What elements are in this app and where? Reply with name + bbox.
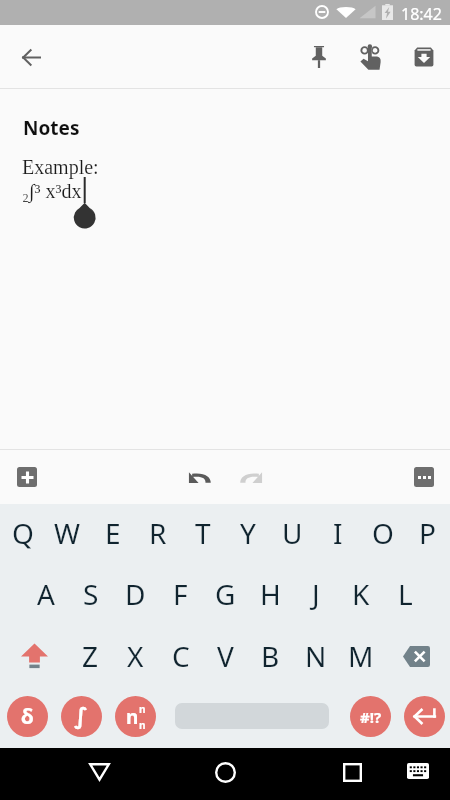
button[interactable]: P <box>405 504 450 562</box>
button[interactable]: Archive <box>401 38 446 76</box>
staticText: K <box>352 575 370 613</box>
staticText: S <box>83 575 99 613</box>
staticText: M <box>348 637 374 675</box>
staticText: D <box>125 575 146 613</box>
staticText: Z <box>82 637 99 675</box>
staticText: δ <box>21 702 34 731</box>
button[interactable]: Switch keyboard <box>395 748 440 793</box>
staticText: H <box>260 575 281 613</box>
staticText: I <box>333 514 343 552</box>
staticText: A <box>37 575 55 613</box>
button[interactable]: Recent apps <box>328 748 376 796</box>
button[interactable]: δ <box>7 696 48 737</box>
staticText: ₂∫³ x³dx <box>22 180 82 202</box>
staticText: n <box>126 704 139 730</box>
staticText: #!? <box>360 707 382 727</box>
button[interactable]: Undo <box>180 458 218 496</box>
button[interactable]: R <box>135 504 180 562</box>
button[interactable]: O <box>360 504 405 562</box>
button[interactable]: Integral <box>61 696 102 737</box>
button[interactable]: Pin note <box>296 38 341 76</box>
button[interactable]: Symbols <box>350 696 391 737</box>
button[interactable]: Exponent <box>115 696 156 737</box>
button[interactable]: Y <box>225 504 270 562</box>
button[interactable]: Q <box>0 504 45 562</box>
button[interactable]: Back <box>75 748 123 796</box>
button[interactable]: S <box>68 565 113 623</box>
staticText: O <box>372 514 394 552</box>
button[interactable]: A <box>23 565 68 623</box>
staticText: n <box>139 718 146 732</box>
staticText: R <box>149 514 167 552</box>
staticText: P <box>419 514 436 552</box>
button[interactable]: M <box>338 627 383 685</box>
button[interactable]: Add attachment <box>8 458 45 495</box>
button[interactable]: H <box>248 565 293 623</box>
button[interactable]: V <box>203 627 248 685</box>
staticText: Q <box>12 514 34 552</box>
button[interactable]: Backspace <box>394 627 439 685</box>
button[interactable]: E <box>90 504 135 562</box>
button[interactable]: N <box>293 627 338 685</box>
staticText: 18:42 <box>401 3 442 25</box>
button[interactable]: K <box>338 565 383 623</box>
staticText: C <box>172 637 190 675</box>
staticText: U <box>282 514 303 552</box>
staticText: Notes <box>23 115 80 141</box>
button[interactable]: J <box>293 565 338 623</box>
staticText: N <box>305 637 327 675</box>
button[interactable]: Redo <box>232 458 270 496</box>
staticText: ∫ <box>74 703 89 730</box>
button[interactable]: X <box>113 627 158 685</box>
staticText: L <box>398 575 413 613</box>
button[interactable]: Navigate up <box>8 36 53 78</box>
staticText: F <box>173 575 188 613</box>
button[interactable]: I <box>315 504 360 562</box>
button[interactable]: More options <box>405 458 442 495</box>
staticText: E <box>105 514 121 552</box>
button[interactable]: Enter <box>404 696 445 737</box>
staticText: T <box>195 514 211 552</box>
button[interactable]: C <box>158 627 203 685</box>
staticText: W <box>54 514 81 552</box>
button[interactable]: D <box>113 565 158 623</box>
button[interactable]: U <box>270 504 315 562</box>
button[interactable]: W <box>45 504 90 562</box>
button[interactable]: Home <box>201 748 249 796</box>
staticText: Example: <box>22 156 99 178</box>
staticText: G <box>215 575 236 613</box>
staticText: V <box>217 637 234 675</box>
button[interactable]: F <box>158 565 203 623</box>
button[interactable]: L <box>383 565 428 623</box>
button[interactable]: Z <box>68 627 113 685</box>
staticText: J <box>312 575 320 613</box>
button[interactable]: Add reminder <box>348 38 393 76</box>
staticText: X <box>127 637 144 675</box>
staticText: n <box>139 702 146 716</box>
staticText: Y <box>240 514 256 552</box>
button[interactable]: B <box>248 627 293 685</box>
button[interactable]: T <box>180 504 225 562</box>
button[interactable]: G <box>203 565 248 623</box>
button[interactable]: Shift <box>12 627 57 685</box>
staticText: B <box>261 637 280 675</box>
